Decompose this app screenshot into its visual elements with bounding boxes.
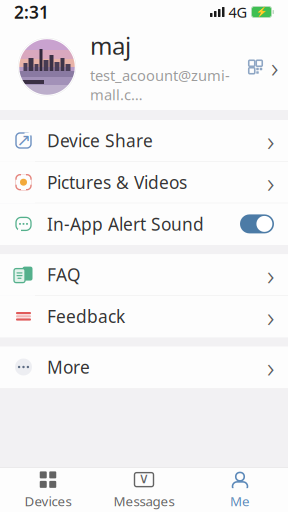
staticText: ∨: [138, 470, 149, 486]
button[interactable]: Devices: [0, 465, 96, 512]
staticText: ›: [267, 256, 274, 293]
staticText: Pictures & Videos: [47, 171, 187, 194]
button[interactable]: More: [0, 346, 288, 388]
staticText: ⚡: [255, 7, 267, 17]
staticText: Me: [230, 492, 250, 510]
staticText: FAQ: [47, 263, 81, 286]
staticText: Feedback: [47, 305, 125, 328]
staticText: maj: [90, 30, 131, 61]
button[interactable]: In-App Alert Sound: [0, 203, 288, 245]
staticText: ↗: [16, 130, 31, 150]
button[interactable]: Feedback: [0, 296, 288, 337]
staticText: 2:31: [14, 0, 49, 23]
staticText: Devices: [24, 492, 71, 510]
button[interactable]: Pictures & Videos: [0, 162, 288, 203]
button[interactable]: FAQ: [0, 254, 288, 296]
button[interactable]: ∨: [96, 465, 192, 512]
staticText: ›: [271, 48, 278, 86]
staticText: More: [47, 355, 90, 378]
button[interactable]: ↗: [0, 120, 288, 162]
button[interactable]: maj: [0, 24, 288, 110]
button[interactable]: Me: [192, 465, 288, 512]
staticText: ›: [267, 298, 274, 335]
staticText: ›: [267, 348, 274, 386]
staticText: Device Share: [47, 129, 153, 152]
staticText: Messages: [113, 492, 174, 510]
staticText: ›: [267, 164, 274, 201]
staticText: 4G: [228, 2, 247, 22]
staticText: ›: [267, 122, 274, 159]
staticText: test_acoount@zumimall.c…: [90, 65, 230, 104]
staticText: In-App Alert Sound: [47, 212, 204, 235]
